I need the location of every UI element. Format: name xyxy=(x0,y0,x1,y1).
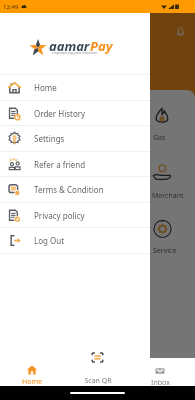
staticText: Log Out xyxy=(34,235,65,246)
button[interactable]: Log Out xyxy=(0,228,150,253)
staticText: Refer a friend xyxy=(34,159,86,170)
button[interactable]: Gas xyxy=(153,107,171,143)
button[interactable]: Merchant xyxy=(152,163,184,201)
button[interactable]: Privacy policy xyxy=(0,203,150,228)
staticText: Home xyxy=(22,377,42,387)
staticText: Pay xyxy=(90,37,113,55)
button[interactable]: Inbox xyxy=(142,366,178,388)
staticText: Service xyxy=(153,246,177,256)
staticText: Terms & Condition xyxy=(34,184,104,195)
button[interactable]: Settings xyxy=(0,126,150,151)
button[interactable]: Home xyxy=(0,75,150,100)
staticText: 12:49 xyxy=(3,3,19,11)
staticText: Privacy policy xyxy=(34,210,85,221)
button[interactable]: Order History xyxy=(0,101,150,126)
staticText: empowering your business xyxy=(52,50,97,55)
staticText: Merchant xyxy=(152,191,184,201)
button[interactable]: Refer a friend xyxy=(0,152,150,177)
staticText: Settings xyxy=(34,133,65,144)
button[interactable]: Notifications xyxy=(171,22,189,40)
button[interactable]: Home xyxy=(14,365,50,387)
button[interactable]: Scan QR xyxy=(85,345,110,370)
staticText: aamar xyxy=(49,37,90,55)
staticText: Scan QR xyxy=(84,376,112,386)
staticText: Order History xyxy=(34,108,86,119)
button[interactable]: Terms & Condition xyxy=(0,177,150,202)
staticText: Inbox xyxy=(151,378,170,388)
staticText: Gas xyxy=(153,133,166,143)
staticText: Home xyxy=(34,82,57,93)
button[interactable]: Service xyxy=(153,219,177,256)
